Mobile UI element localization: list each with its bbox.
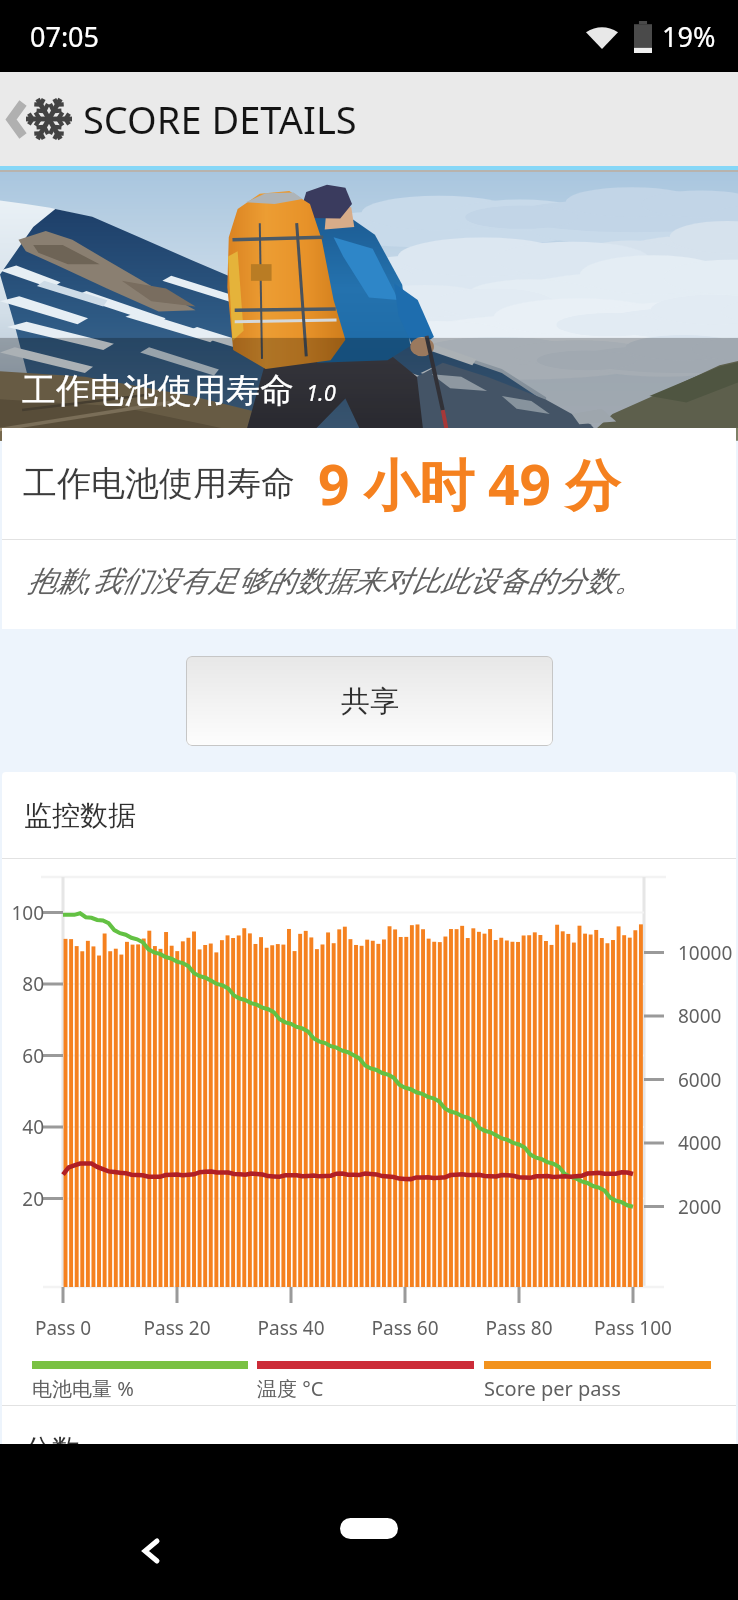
staticText: 9 小时 49 分 bbox=[318, 446, 621, 521]
button[interactable]: 共享 bbox=[186, 656, 553, 746]
staticText: 监控数据 bbox=[24, 798, 136, 833]
staticText: 2000 bbox=[678, 1194, 722, 1220]
staticText: Pass 0 bbox=[3, 1315, 123, 1341]
staticText: Pass 100 bbox=[573, 1315, 693, 1341]
staticText: 工作电池使用寿命 bbox=[23, 462, 295, 505]
staticText: 电池电量 % bbox=[32, 1375, 134, 1402]
staticText: 07:05 bbox=[30, 18, 100, 55]
staticText: 抱歉,我们没有足够的数据来对比此设备的分数。 bbox=[27, 560, 644, 600]
staticText: Pass 60 bbox=[345, 1315, 465, 1341]
staticText: SCORE DETAILS bbox=[83, 93, 357, 145]
staticText: 温度 °C bbox=[257, 1375, 324, 1402]
button[interactable]: Back bbox=[121, 1521, 181, 1581]
staticText: Pass 80 bbox=[459, 1315, 579, 1341]
staticText: 6000 bbox=[678, 1067, 722, 1093]
staticText: 60 bbox=[2, 1043, 44, 1069]
staticText: 共享 bbox=[341, 683, 399, 720]
staticText: Score per pass bbox=[484, 1375, 621, 1402]
staticText: 分数 bbox=[24, 1432, 80, 1467]
staticText: 20 bbox=[2, 1186, 44, 1212]
staticText: 工作电池使用寿命 bbox=[22, 369, 294, 412]
staticText: 80 bbox=[2, 971, 44, 997]
staticText: 40 bbox=[2, 1114, 44, 1140]
staticText: Pass 40 bbox=[231, 1315, 351, 1341]
staticText: Pass 20 bbox=[117, 1315, 237, 1341]
staticText: 1.0 bbox=[306, 377, 336, 407]
button[interactable]: Home bbox=[340, 1518, 398, 1539]
staticText: 8000 bbox=[678, 1003, 722, 1029]
staticText: 19% bbox=[662, 18, 716, 55]
staticText: 4000 bbox=[678, 1130, 722, 1156]
staticText: 10000 bbox=[678, 940, 733, 966]
button[interactable]: Back bbox=[4, 83, 80, 155]
staticText: 100 bbox=[2, 900, 44, 926]
